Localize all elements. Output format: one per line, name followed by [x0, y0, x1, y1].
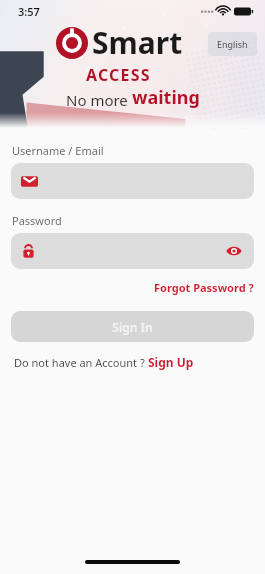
- staticText: English: [217, 38, 248, 50]
- button[interactable]: Sign In: [11, 311, 254, 342]
- button[interactable]: [11, 163, 254, 199]
- staticText: waiting: [132, 85, 200, 110]
- staticText: Smart: [92, 22, 183, 63]
- staticText: Sign Up: [148, 354, 194, 370]
- staticText: Sign In: [112, 319, 153, 335]
- staticText: Password: [12, 213, 62, 228]
- button[interactable]: Show password: [11, 233, 254, 269]
- staticText: Forgot Password ?: [154, 280, 254, 295]
- staticText: Username / Email: [12, 143, 104, 158]
- staticText: 3:57: [18, 4, 40, 19]
- staticText: Do not have an Account ?: [14, 355, 148, 370]
- button[interactable]: Sign Up: [148, 354, 194, 370]
- staticText: ACCESS: [86, 64, 151, 86]
- button[interactable]: Forgot Password ?: [143, 278, 265, 297]
- staticText: No more: [66, 90, 132, 110]
- button[interactable]: Show password: [224, 241, 244, 261]
- button[interactable]: English: [208, 32, 257, 56]
